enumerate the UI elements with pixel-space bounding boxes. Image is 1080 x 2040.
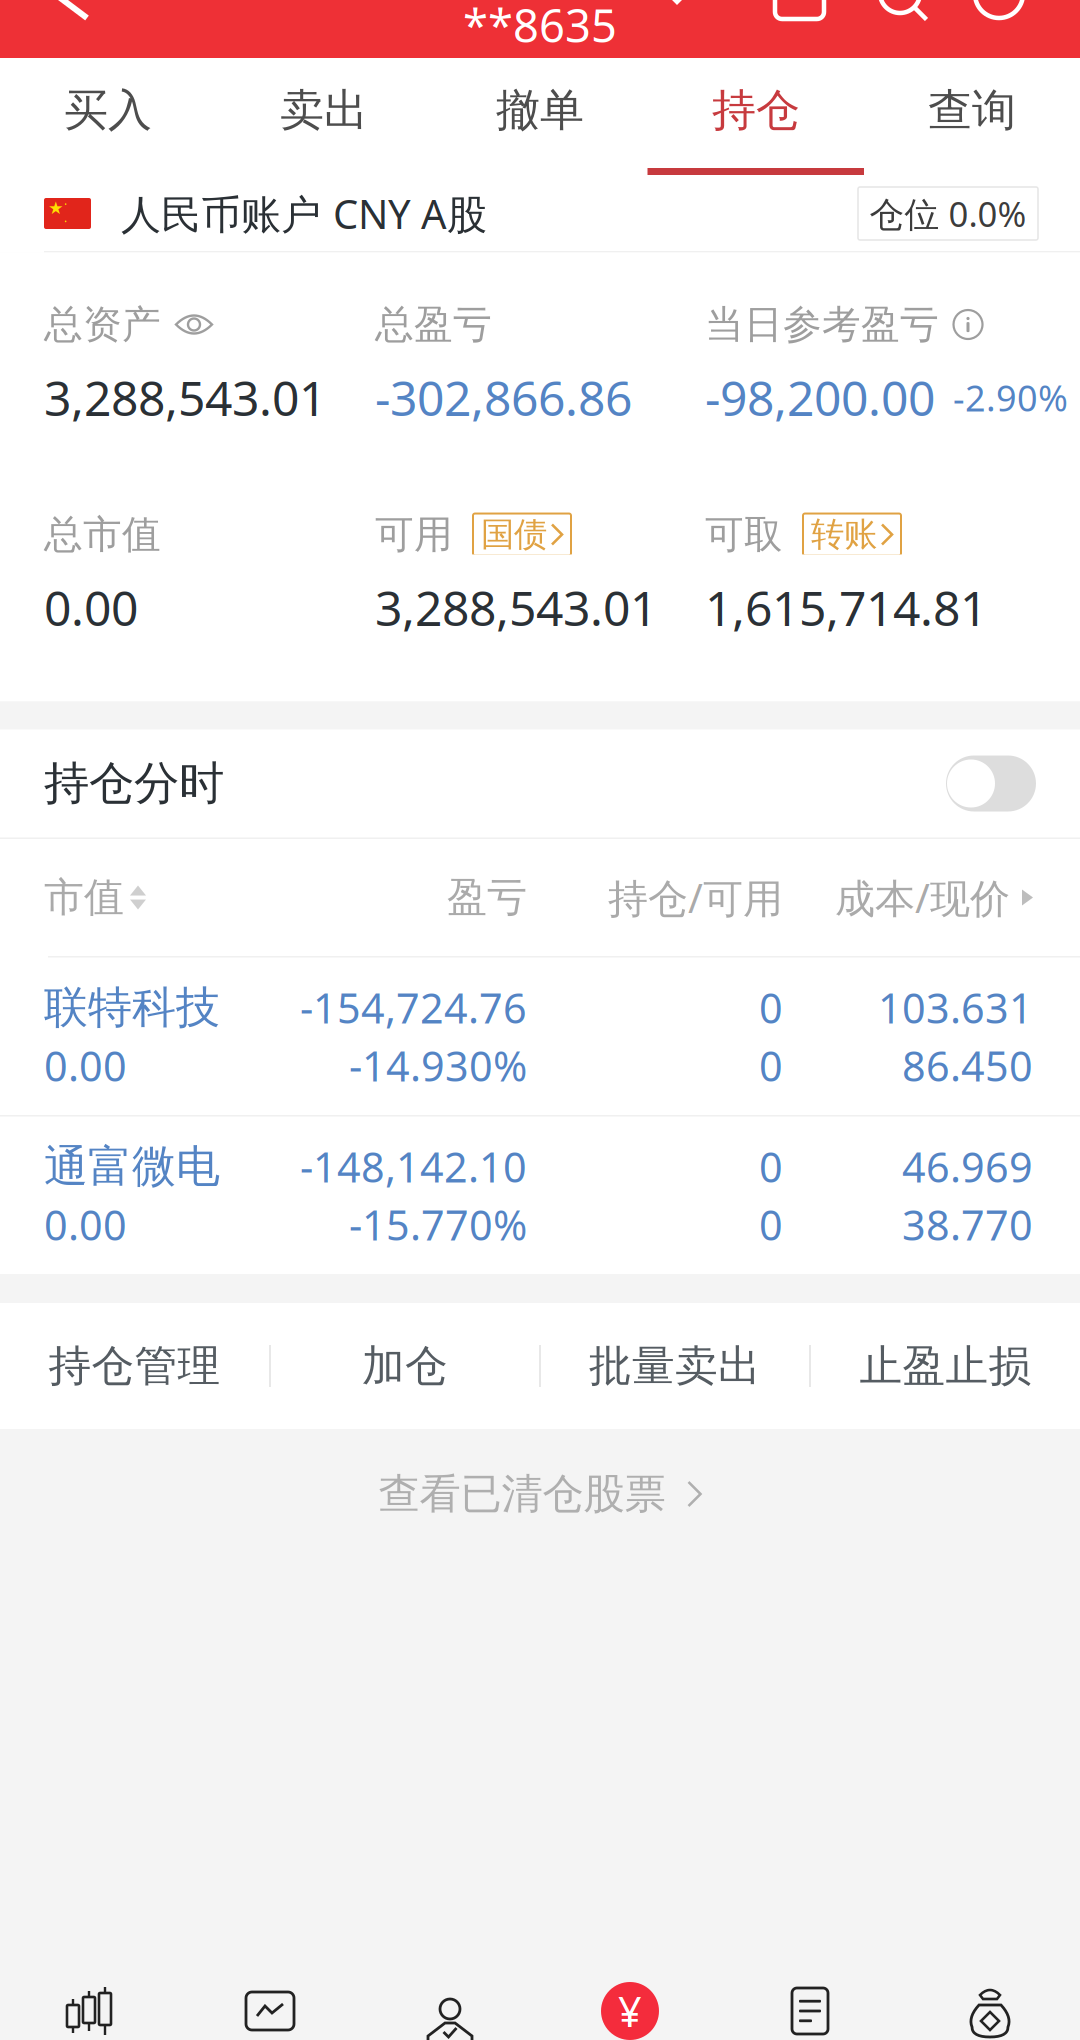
staticText: -154,724.76 xyxy=(300,979,527,1036)
staticText: 查询 xyxy=(928,83,1016,138)
staticText: 加仓 xyxy=(362,1339,448,1393)
button[interactable]: 加仓 xyxy=(271,1303,539,1429)
button[interactable]: 通富微电 xyxy=(0,1115,1080,1274)
button[interactable]: 卖出 xyxy=(216,58,432,176)
staticText: -14.930% xyxy=(349,1037,527,1094)
staticText: · xyxy=(64,196,67,212)
staticText: -302,866.86 xyxy=(375,365,632,430)
staticText: 0 xyxy=(759,1138,783,1195)
staticText: 0 xyxy=(759,1196,783,1253)
staticText: 可用 xyxy=(375,510,453,559)
button[interactable]: Account xyxy=(360,1956,540,2040)
button[interactable]: 止盈止损 xyxy=(811,1303,1080,1429)
button[interactable]: Assets xyxy=(900,1956,1080,2040)
staticText: 3,288,543.01 xyxy=(44,365,326,430)
staticText: 当日参考盈亏 xyxy=(705,300,939,349)
staticText: 人民币账户 CNY A股 xyxy=(121,186,487,241)
staticText: -15.770% xyxy=(349,1196,527,1253)
staticText: ★ xyxy=(48,198,64,218)
staticText: 0 xyxy=(759,1037,783,1094)
staticText: 0 xyxy=(759,979,783,1036)
staticText: 0.00 xyxy=(44,1037,127,1094)
staticText: 转账 xyxy=(811,513,877,555)
button[interactable]: Notes xyxy=(0,0,80,58)
staticText: 撤单 xyxy=(496,83,584,138)
staticText: 仓位 0.0% xyxy=(869,190,1026,237)
staticText: 联特科技 xyxy=(44,980,220,1035)
staticText: 通富微电 xyxy=(44,1139,220,1194)
staticText: 盈亏 xyxy=(447,872,527,923)
staticText: 0.00 xyxy=(44,1196,127,1253)
staticText: 38.770 xyxy=(902,1196,1033,1253)
button[interactable]: 持仓分时 xyxy=(0,729,1080,839)
button[interactable]: Trade xyxy=(540,1956,720,2040)
staticText: 总盈亏 xyxy=(375,300,492,349)
staticText: 止盈止损 xyxy=(859,1339,1031,1393)
staticText: -148,142.10 xyxy=(300,1138,527,1195)
button[interactable]: ★ xyxy=(0,176,1080,252)
staticText: ¥ xyxy=(618,1983,642,2039)
staticText: 1,615,714.81 xyxy=(705,575,987,640)
staticText: 总市值 xyxy=(44,510,161,559)
staticText: **8635 xyxy=(463,0,617,56)
staticText: 买入 xyxy=(64,83,152,138)
staticText: 103.631 xyxy=(878,979,1033,1036)
staticText: 国债 xyxy=(481,513,547,555)
staticText: 持仓/可用 xyxy=(608,870,783,925)
button[interactable]: 联特科技 xyxy=(0,956,1080,1115)
staticText: 可取 xyxy=(705,510,783,559)
staticText: 3,288,543.01 xyxy=(375,575,657,640)
staticText: 总资产 xyxy=(44,300,161,349)
staticText: 市值 xyxy=(44,872,124,923)
staticText: 86.450 xyxy=(902,1037,1033,1094)
button[interactable]: Back xyxy=(0,0,120,58)
button[interactable]: 持仓 xyxy=(648,58,864,176)
button[interactable]: Market xyxy=(0,1956,180,2040)
staticText: 持仓分时 xyxy=(44,755,224,812)
staticText: 批量卖出 xyxy=(589,1339,761,1393)
staticText: 0.00 xyxy=(44,575,138,640)
button[interactable]: Search xyxy=(0,0,80,58)
button[interactable]: Orders xyxy=(720,1956,900,2040)
button[interactable]: 查询 xyxy=(864,58,1080,176)
staticText: 46.969 xyxy=(902,1138,1033,1195)
staticText: 持仓 xyxy=(712,83,800,138)
staticText: -2.90% xyxy=(953,373,1068,422)
button[interactable]: Quotes xyxy=(180,1956,360,2040)
staticText: 卖出 xyxy=(280,83,368,138)
button[interactable]: 批量卖出 xyxy=(541,1303,809,1429)
button[interactable]: 持仓管理 xyxy=(0,1303,269,1429)
staticText: 查看已清仓股票 xyxy=(378,1468,665,1520)
button[interactable]: 查看已清仓股票 xyxy=(0,1429,1080,1559)
staticText: 持仓管理 xyxy=(48,1339,220,1393)
staticText: 成本/现价 xyxy=(835,870,1010,925)
staticText: · xyxy=(64,213,67,230)
staticText: -98,200.00 xyxy=(705,365,935,430)
button[interactable]: 撤单 xyxy=(432,58,648,176)
button[interactable]: 买入 xyxy=(0,58,216,176)
button[interactable]: Refresh xyxy=(0,0,80,58)
